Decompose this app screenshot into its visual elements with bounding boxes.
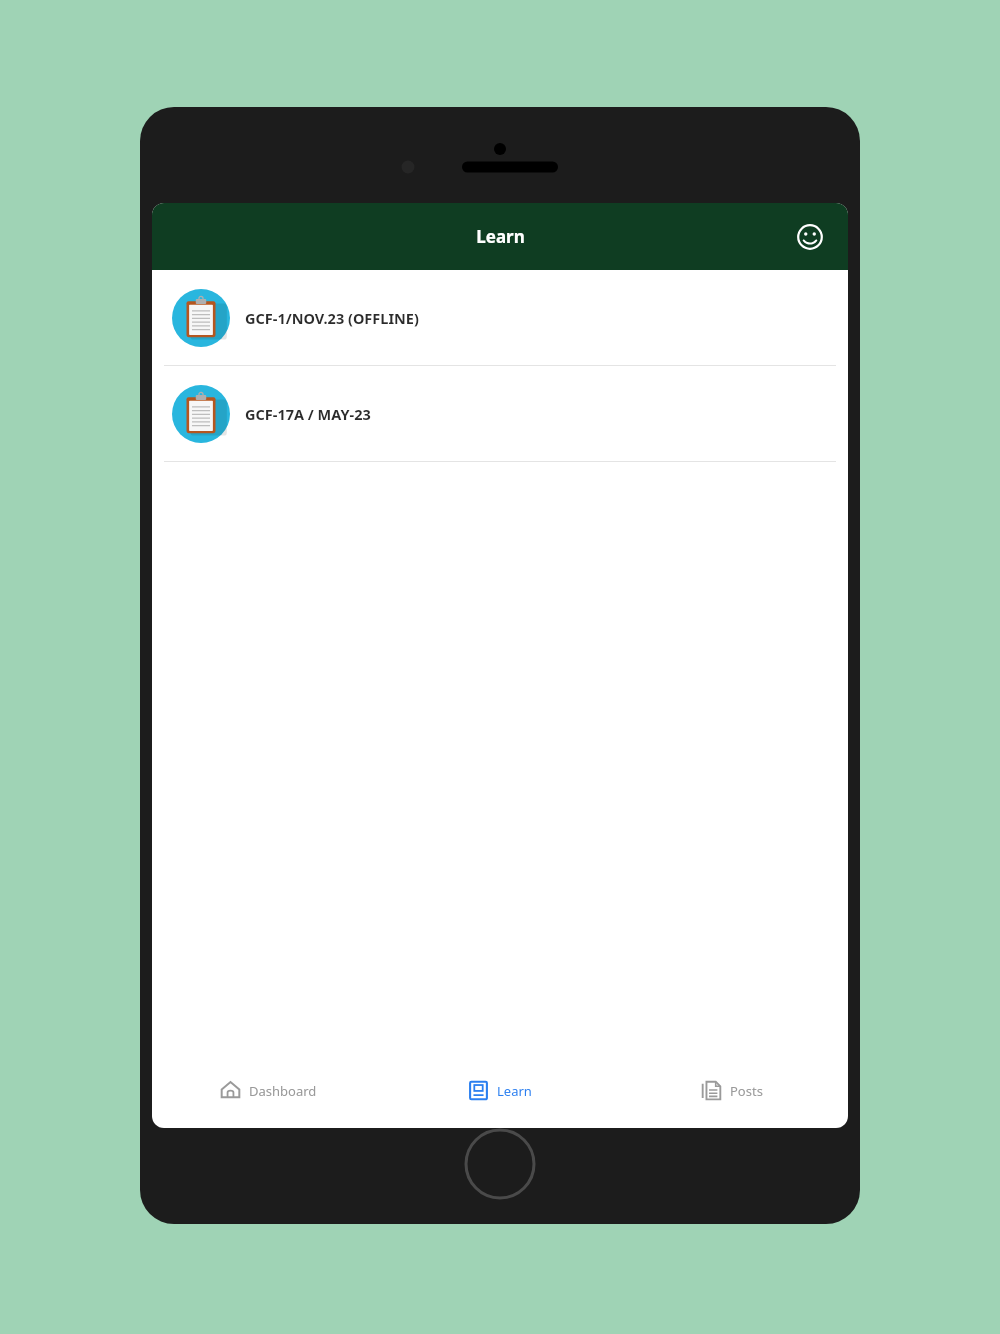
staticText: GCF-1/NOV.23 (OFFLINE) <box>245 308 419 328</box>
staticText: GCF-17A / MAY-23 <box>245 404 371 424</box>
button[interactable]: Feedback <box>790 217 830 257</box>
button[interactable]: GCF-1/NOV.23 (OFFLINE) <box>152 270 848 365</box>
staticText: Learn <box>497 1082 532 1100</box>
button[interactable]: GCF-17A / MAY-23 <box>152 366 848 461</box>
staticText: Dashboard <box>249 1082 317 1100</box>
staticText: Learn <box>476 225 525 248</box>
button[interactable]: Dashboard <box>152 1052 384 1128</box>
button[interactable]: Posts <box>616 1052 848 1128</box>
button[interactable]: Learn <box>384 1052 616 1128</box>
staticText: Posts <box>730 1082 763 1100</box>
